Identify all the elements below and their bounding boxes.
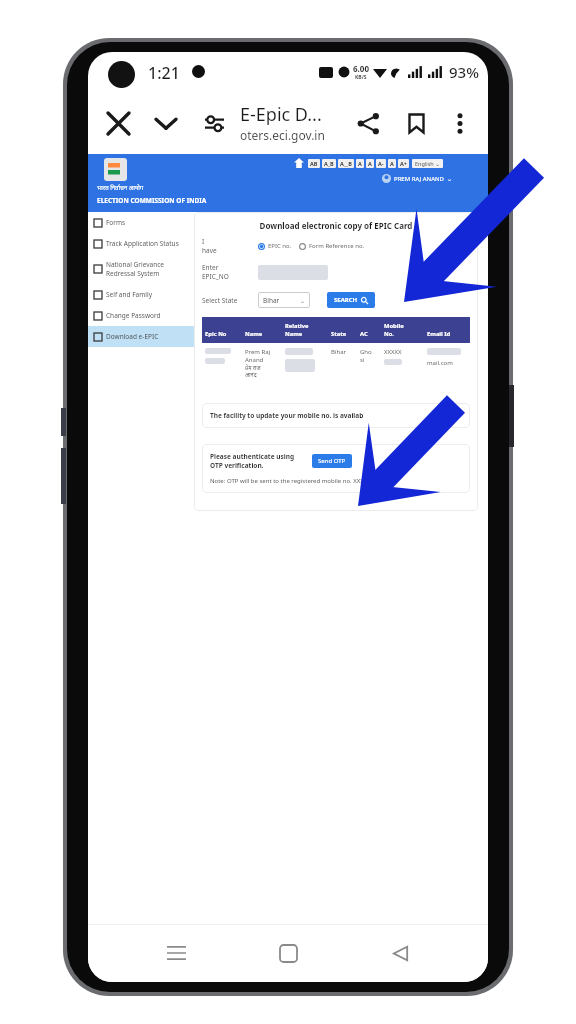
staticText: Gho [360, 348, 372, 356]
staticText: Forms [106, 218, 126, 227]
staticText: Change Password [106, 311, 161, 320]
button[interactable]: A [366, 159, 374, 168]
button[interactable]: Send OTP [312, 454, 352, 468]
staticText: 93% [449, 62, 479, 82]
staticText: Name [245, 330, 263, 338]
button[interactable]: Forms [88, 212, 194, 233]
staticText: A [368, 160, 372, 167]
button[interactable]: Bihar [258, 292, 310, 308]
staticText: Download electronic copy of EPIC Card [202, 220, 470, 231]
staticText: Bihar [263, 296, 280, 305]
staticText: Bihar [331, 348, 347, 356]
button[interactable]: Minimize [146, 103, 186, 143]
staticText: si [360, 356, 365, 364]
staticText: I [202, 237, 205, 246]
staticText: AC [360, 330, 368, 338]
staticText: Send OTP [318, 457, 346, 465]
staticText: A__B [340, 160, 352, 167]
staticText: Note: OTP will be sent to the registered… [210, 477, 371, 485]
staticText: A+ [400, 160, 407, 167]
staticText: Self and Family [106, 290, 152, 299]
button[interactable]: A+ [398, 159, 409, 168]
staticText: OTP verification. [210, 461, 264, 470]
button[interactable]: A [388, 159, 396, 168]
staticText: A [390, 160, 394, 167]
staticText: SEARCH [334, 296, 358, 304]
staticText: Download e-EPIC [106, 332, 159, 341]
button[interactable]: National Grievance Redressal System [88, 254, 194, 284]
button[interactable]: A_B [322, 159, 336, 168]
staticText: KB/S [355, 74, 367, 81]
staticText: Select State [202, 296, 258, 305]
button[interactable]: English ⌄ [412, 159, 443, 168]
button[interactable]: Page settings [194, 103, 234, 143]
staticText: Epic No [205, 330, 227, 338]
staticText: EPIC no. [268, 242, 292, 250]
button[interactable]: Change Password [88, 305, 194, 326]
staticText: English ⌄ [415, 160, 440, 167]
staticText: ⌄ [300, 297, 306, 304]
button[interactable]: Home [264, 929, 312, 977]
staticText: प्रेम राज [245, 364, 261, 371]
staticText: Form Reference no. [309, 242, 365, 250]
staticText: Anand [245, 356, 264, 364]
staticText: A [358, 160, 362, 167]
staticText: A- [378, 160, 384, 167]
staticText: Please authenticate using [210, 452, 295, 461]
button[interactable]: EPIC no. [258, 242, 292, 250]
staticText: have [202, 246, 217, 255]
button[interactable]: Form Reference no. [299, 242, 365, 250]
staticText: XXXXX [384, 348, 402, 356]
staticText: Prem Raj [245, 348, 271, 356]
staticText: Enter [202, 263, 219, 272]
staticText: AB [310, 160, 318, 167]
staticText: भारत निर्वाचन आयोग [97, 184, 144, 192]
staticText: Email Id [427, 330, 451, 338]
button[interactable]: SEARCH [327, 292, 375, 308]
button[interactable]: Recent apps [152, 929, 200, 977]
staticText: oters.eci.gov.in [240, 127, 325, 143]
button[interactable]: A [356, 159, 364, 168]
staticText: State [331, 330, 347, 338]
staticText: Relative Name [285, 322, 309, 338]
staticText: E-Epic D... [240, 102, 322, 127]
button[interactable]: A- [376, 159, 386, 168]
button[interactable]: Track Application Status [88, 233, 194, 254]
staticText: 1:21 [148, 62, 180, 84]
staticText: Mobile No. [384, 322, 404, 338]
button[interactable]: A__B [338, 159, 354, 168]
staticText: ELECTION COMMISSION OF INDIA [97, 196, 207, 205]
staticText: आनंद [245, 371, 257, 378]
staticText: PREM RAJ ANAND ⌄ [394, 175, 453, 183]
button[interactable]: PREM RAJ ANAND ⌄ [382, 174, 453, 183]
button[interactable]: More options [440, 103, 480, 143]
staticText: Track Application Status [106, 239, 179, 248]
staticText: A_B [324, 160, 334, 167]
staticText: National Grievance Redressal System [106, 260, 164, 278]
button[interactable]: Download e-EPIC [88, 326, 194, 347]
staticText: mail.com [427, 359, 453, 367]
button[interactable]: Share [348, 103, 388, 143]
button[interactable]: Self and Family [88, 284, 194, 305]
staticText: EPIC_NO [202, 272, 229, 281]
staticText: The facility to update your mobile no. i… [210, 411, 364, 420]
staticText: 6.00 [353, 63, 369, 74]
button[interactable]: AB [308, 159, 320, 168]
button[interactable]: Back [376, 929, 424, 977]
button[interactable]: Bookmark [396, 103, 436, 143]
button[interactable]: E-Epic D... [240, 102, 325, 143]
button[interactable]: Close [98, 103, 138, 143]
